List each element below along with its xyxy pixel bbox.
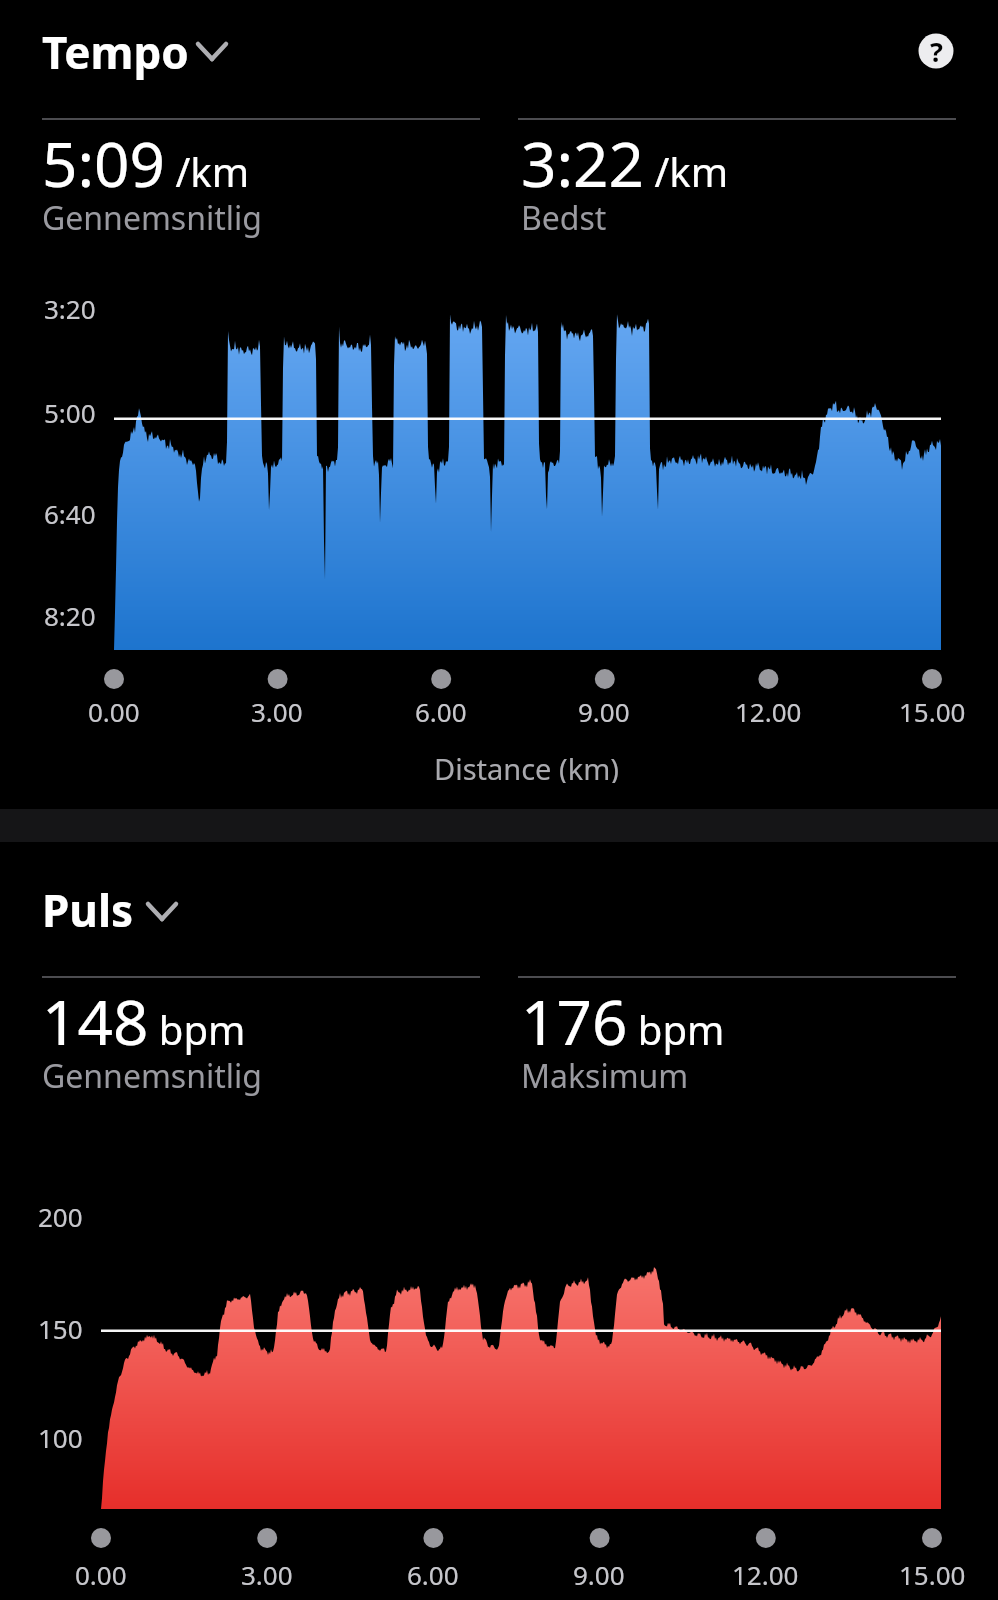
staticText: 6:40 xyxy=(44,496,96,528)
staticText: 6.00 xyxy=(415,694,467,726)
staticText: 9.00 xyxy=(578,694,630,726)
button[interactable] xyxy=(908,23,964,79)
staticText: 12.00 xyxy=(735,694,802,726)
staticText: Puls xyxy=(42,880,134,940)
staticText: 150 xyxy=(38,1311,83,1343)
staticText: Tempo xyxy=(42,22,189,82)
staticText: Distance (km) xyxy=(434,749,620,783)
staticText: Gennemsnitlig xyxy=(42,196,262,240)
staticText: Gennemsnitlig xyxy=(42,1054,262,1098)
button[interactable] xyxy=(36,878,196,944)
staticText: 176 bpm xyxy=(521,979,725,1063)
staticText: 100 xyxy=(38,1420,83,1452)
staticText: 9.00 xyxy=(573,1557,625,1589)
staticText: 8:20 xyxy=(44,598,96,630)
staticText: 3:20 xyxy=(44,291,96,323)
staticText: 3:22 /km xyxy=(521,121,729,205)
staticText: ? xyxy=(930,33,943,70)
staticText: Maksimum xyxy=(521,1054,689,1098)
staticText: 15.00 xyxy=(899,694,966,726)
staticText: 15.00 xyxy=(899,1557,966,1589)
staticText: 5:00 xyxy=(44,395,96,427)
staticText: 3.00 xyxy=(241,1557,293,1589)
staticText: 6.00 xyxy=(407,1557,459,1589)
staticText: 200 xyxy=(38,1199,83,1231)
staticText: 0.00 xyxy=(88,694,140,726)
staticText: 148 bpm xyxy=(42,979,246,1063)
staticText: 0.00 xyxy=(75,1557,127,1589)
staticText: 3.00 xyxy=(251,694,303,726)
staticText: 12.00 xyxy=(732,1557,799,1589)
button[interactable] xyxy=(36,18,236,84)
staticText: 5:09 /km xyxy=(42,121,250,205)
staticText: Bedst xyxy=(521,196,607,240)
